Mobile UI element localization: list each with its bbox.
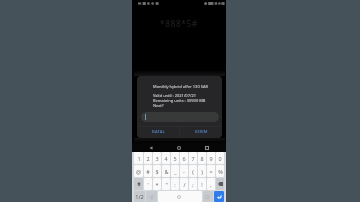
button[interactable]: 2 xyxy=(144,152,152,164)
staticText: 7 xyxy=(191,155,195,162)
staticText: ; xyxy=(192,181,194,188)
button[interactable]: 9 xyxy=(207,152,215,164)
staticText: Monthly hybrid offer 130 SAR xyxy=(153,84,208,89)
staticText: & xyxy=(164,168,169,175)
staticText: " xyxy=(165,181,168,188)
button[interactable]: 8 xyxy=(198,152,206,164)
button[interactable]: 4 xyxy=(162,152,170,164)
staticText: KIRIM xyxy=(195,129,208,135)
staticText: : xyxy=(174,181,176,188)
button[interactable]: % xyxy=(216,165,224,177)
staticText: 1/2 xyxy=(135,193,144,200)
staticText: * xyxy=(155,181,159,188)
button[interactable]: * xyxy=(153,178,161,190)
button[interactable]: Home xyxy=(170,143,188,152)
button[interactable]: : xyxy=(171,178,179,190)
staticText: % xyxy=(218,168,223,175)
button[interactable]: = xyxy=(207,165,215,177)
button[interactable]: _ xyxy=(171,165,179,177)
button[interactable]: 5 xyxy=(171,152,179,164)
staticText: 2 xyxy=(146,155,150,162)
button[interactable]: ' xyxy=(144,178,152,190)
staticText: # xyxy=(146,168,150,175)
staticText: - xyxy=(183,168,185,175)
button[interactable]: & xyxy=(162,165,170,177)
staticText: , xyxy=(210,181,212,188)
button[interactable]: / xyxy=(180,178,188,190)
staticText: $ xyxy=(155,168,159,175)
staticText: Valid until : 2021/07/21 Remaining units… xyxy=(153,93,206,108)
staticText: 8 xyxy=(200,155,204,162)
button[interactable]: , xyxy=(146,191,157,202)
staticText: ' xyxy=(147,181,149,188)
button[interactable]: - xyxy=(180,165,188,177)
staticText: 3 xyxy=(155,155,159,162)
button[interactable] xyxy=(134,178,143,190)
staticText: @ xyxy=(136,168,141,175)
button[interactable] xyxy=(214,191,224,202)
button[interactable]: KIRIM xyxy=(180,126,222,138)
button[interactable]: ! xyxy=(198,178,206,190)
staticText: / xyxy=(183,181,186,188)
button[interactable]: 7 xyxy=(189,152,197,164)
staticText: *888*5# xyxy=(160,18,198,30)
staticText: 4 xyxy=(164,155,168,162)
button[interactable] xyxy=(158,191,202,202)
button[interactable]: # xyxy=(144,165,152,177)
staticText: . xyxy=(207,193,209,200)
button[interactable]: . xyxy=(203,191,213,202)
button[interactable]: ) xyxy=(198,165,206,177)
button[interactable]: ; xyxy=(189,178,197,190)
staticText: 5 xyxy=(173,155,177,162)
button[interactable]: BATAL xyxy=(137,126,179,138)
button[interactable] xyxy=(216,178,224,190)
button[interactable]: 3 xyxy=(153,152,161,164)
button[interactable]: Recents xyxy=(198,192,216,202)
staticText: 1 xyxy=(137,155,141,162)
staticText: = xyxy=(209,168,213,175)
button[interactable]: 6 xyxy=(180,152,188,164)
staticText: _ xyxy=(174,168,177,175)
button[interactable]: ( xyxy=(189,165,197,177)
staticText: ) xyxy=(201,168,203,175)
staticText: ! xyxy=(201,181,203,188)
button[interactable]: 1/2 xyxy=(134,191,145,202)
staticText: 0 xyxy=(218,155,222,162)
staticText: 9 xyxy=(209,155,213,162)
button[interactable]: 0 xyxy=(216,152,224,164)
button[interactable]: Back xyxy=(142,192,160,202)
staticText: BATAL xyxy=(152,129,165,135)
button[interactable]: Home xyxy=(170,192,188,202)
button[interactable]: $ xyxy=(153,165,161,177)
button[interactable]: 1 xyxy=(134,152,143,164)
staticText: , xyxy=(151,193,153,200)
staticText: ( xyxy=(192,168,194,175)
button[interactable]: Recents xyxy=(198,143,216,152)
button[interactable]: " xyxy=(162,178,170,190)
staticText: 6 xyxy=(182,155,186,162)
button[interactable]: Back xyxy=(142,143,160,152)
button[interactable]: , xyxy=(207,178,215,190)
button[interactable]: @ xyxy=(134,165,143,177)
